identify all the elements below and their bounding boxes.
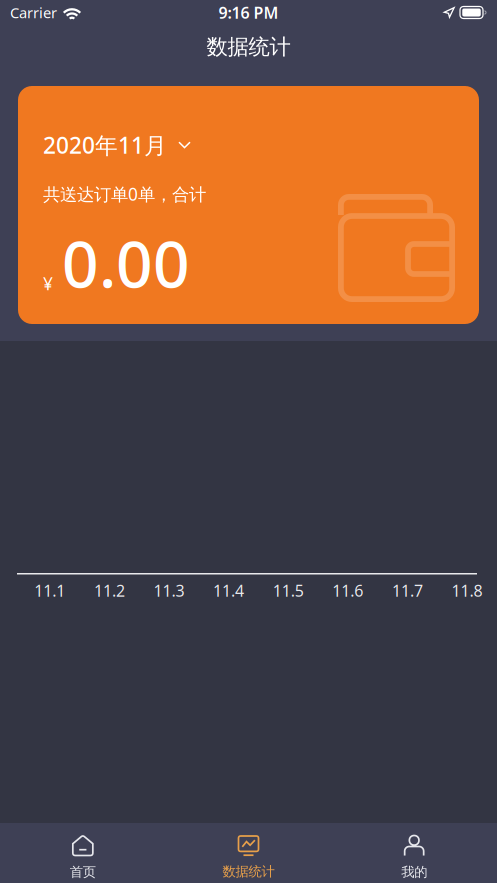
button[interactable]: 数据统计 [166,823,331,883]
staticText: Carrier [10,3,57,22]
staticText: 11.6 [332,580,363,601]
staticText: 11.3 [153,580,184,601]
staticText: 共送达订单0单，合计 [43,182,206,205]
staticText: ¥ [43,272,53,295]
staticText: 11.8 [451,580,482,601]
staticText: 11.7 [392,580,423,601]
staticText: 11.1 [34,580,65,601]
staticText: 11.5 [273,580,304,601]
staticText: 9:16 PM [218,2,278,23]
staticText: 数据统计 [206,34,290,60]
staticText: 数据统计 [222,863,274,880]
staticText: 我的 [401,864,427,880]
staticText: 首页 [70,864,96,880]
button[interactable]: 首页 [0,823,166,883]
button[interactable]: 2020年11月 [43,134,191,156]
staticText: 11.2 [94,580,125,601]
staticText: 2020年11月 [43,130,167,160]
button[interactable]: 我的 [331,823,497,883]
staticText: 0.00 [62,220,190,305]
staticText: 11.4 [213,580,244,601]
